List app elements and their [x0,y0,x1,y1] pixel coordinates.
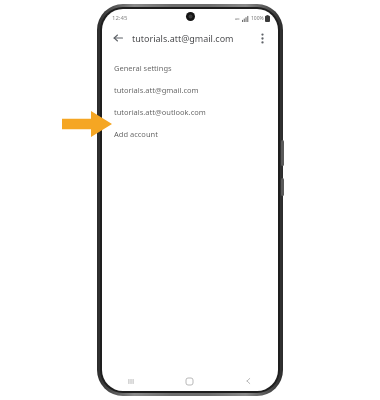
staticText: tutorials.att@outlook.com [114,107,206,117]
other: Pointer to Add account [62,111,112,137]
staticText: ᴀᴏ [235,16,240,21]
button[interactable]: Back [110,30,126,46]
button[interactable]: General settings [102,57,278,79]
staticText: tutorials.att@gmail.com [114,85,199,95]
staticText: tutorials.att@gmail.com [132,32,254,44]
button[interactable]: tutorials.att@outlook.com [102,101,278,123]
button[interactable]: Recent apps [102,371,160,391]
button[interactable]: Home [160,371,219,391]
button[interactable]: tutorials.att@gmail.com [102,79,278,101]
staticText: 12:45 [112,14,128,22]
staticText: General settings [114,63,172,73]
staticText: 100% [251,15,264,22]
button[interactable]: More options [254,30,270,46]
button[interactable]: Add account [102,123,278,145]
staticText: Add account [114,129,158,139]
button[interactable]: Back [219,371,278,391]
